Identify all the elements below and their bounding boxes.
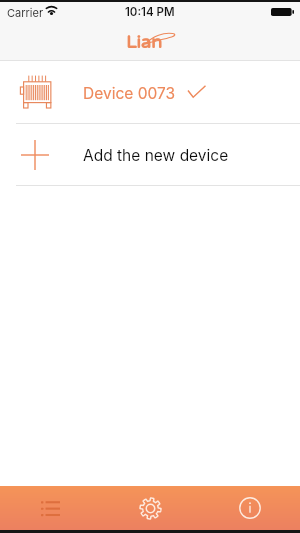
- button[interactable]: Devices: [0, 486, 100, 530]
- button[interactable]: Info: [200, 486, 300, 530]
- staticText: 10:14 PM: [125, 5, 175, 19]
- staticText: Device 0073: [83, 84, 175, 103]
- staticText: Lian: [126, 31, 162, 53]
- staticText: Carrier: [7, 6, 44, 19]
- staticText: Add the new device: [83, 146, 229, 165]
- button[interactable]: Settings: [100, 486, 200, 530]
- button[interactable]: Device 0073: [0, 61, 300, 123]
- button[interactable]: Add the new device: [0, 124, 300, 185]
